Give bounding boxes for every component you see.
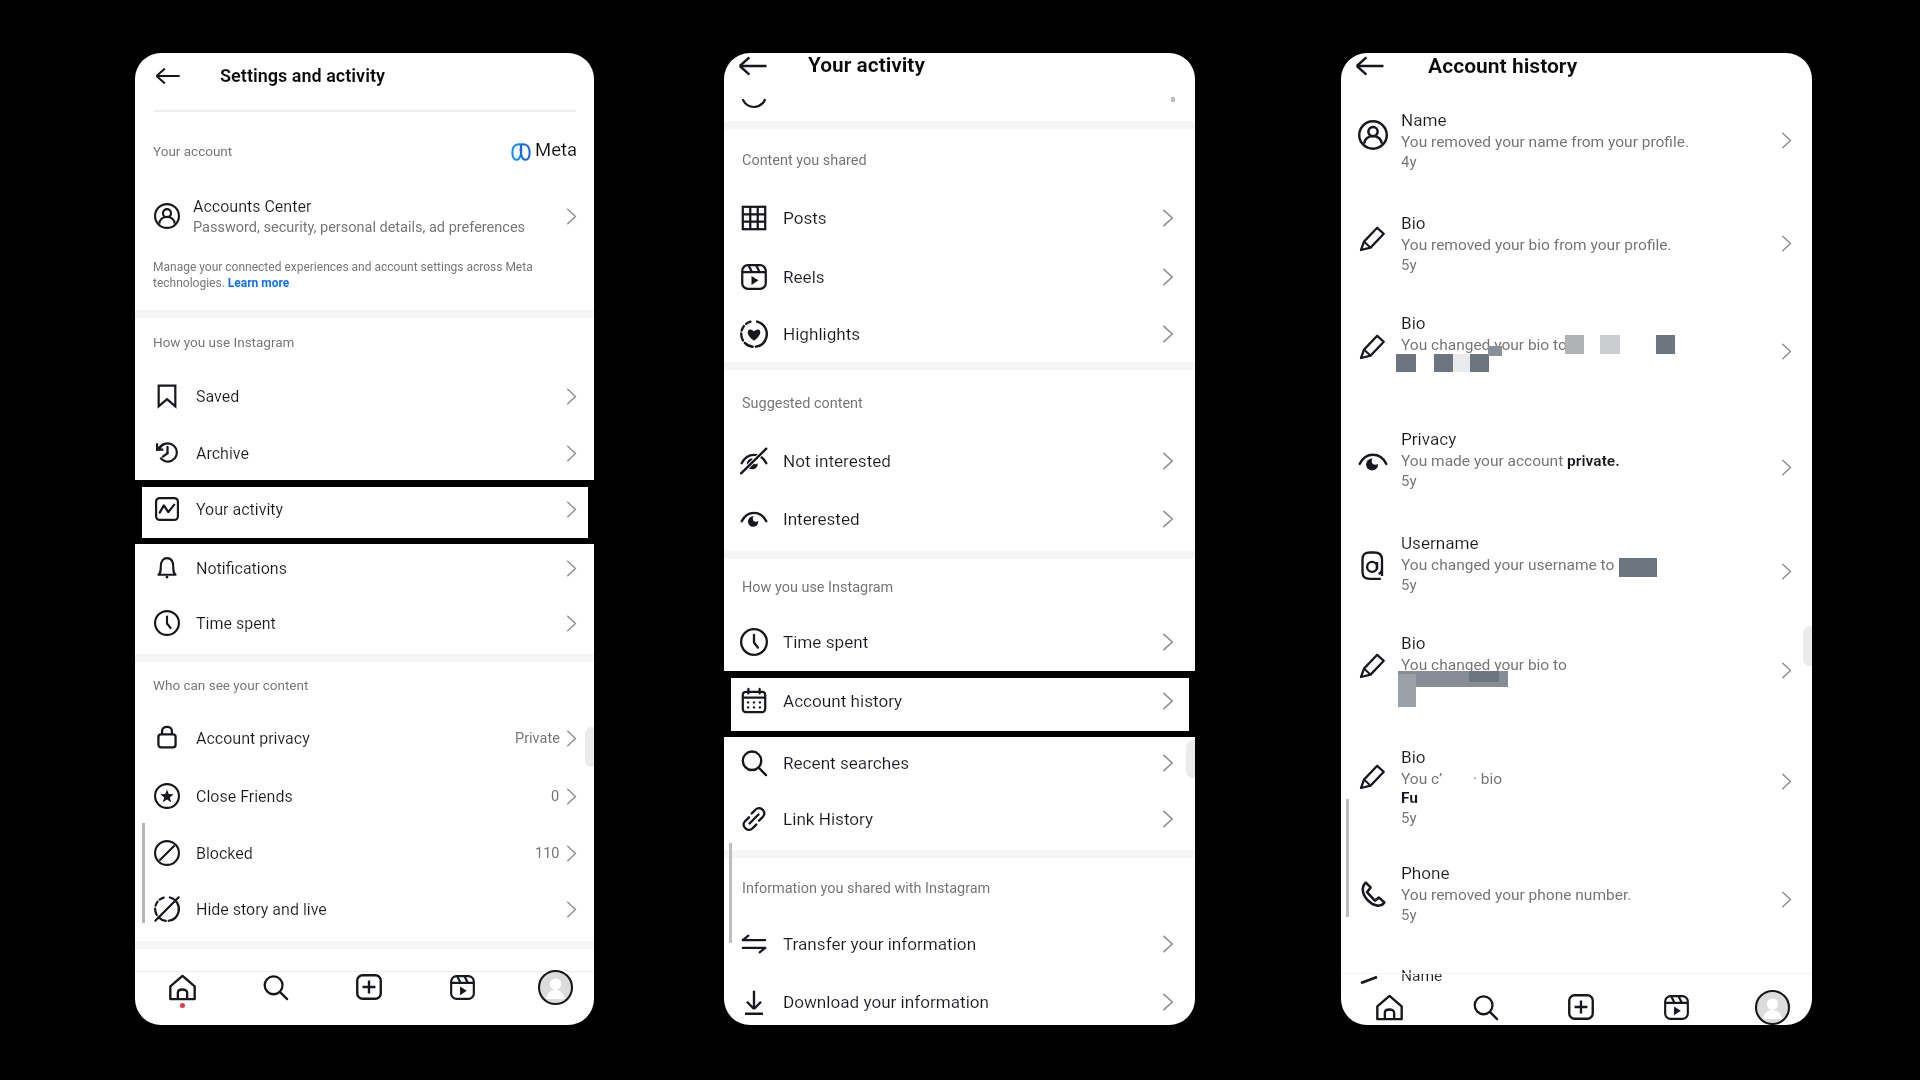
button[interactable]: Posts [724, 190, 1195, 246]
button[interactable]: Name [1341, 110, 1812, 190]
button[interactable]: Blocked [135, 825, 594, 881]
button[interactable]: Time spent [135, 595, 594, 651]
staticText: Suggested content [742, 395, 863, 412]
button[interactable]: Highlights [724, 306, 1195, 362]
button[interactable]: Reels [416, 961, 508, 1013]
button[interactable]: Download your information [724, 974, 1195, 1025]
button[interactable]: Reels [1629, 981, 1723, 1025]
staticText: Bio [1401, 747, 1426, 767]
staticText: Reels [783, 267, 825, 287]
button[interactable]: Time spent [724, 614, 1195, 670]
staticText: 0 [551, 788, 560, 805]
staticText: You removed your phone number. [1401, 886, 1632, 904]
staticText: Private [515, 730, 560, 747]
button[interactable]: Bio [1341, 747, 1812, 827]
staticText: You c’ · bio [1401, 770, 1503, 788]
staticText: 5y [1401, 809, 1417, 827]
staticText: Hide story and live [196, 900, 327, 919]
staticText: Information you shared with Instagram [742, 880, 991, 897]
staticText: Download your information [783, 992, 989, 1012]
staticText: Saved [196, 387, 240, 406]
button[interactable]: Search [229, 961, 321, 1013]
staticText: Archive [196, 444, 249, 463]
button[interactable]: Not interested [724, 433, 1195, 489]
staticText: Not interested [783, 451, 891, 471]
button[interactable]: Interested [724, 491, 1195, 547]
button[interactable]: Bio [1341, 213, 1812, 293]
button[interactable]: Learn more [218, 277, 273, 293]
staticText: Notifications [196, 559, 287, 578]
staticText: 4y [1401, 153, 1417, 171]
staticText: You removed your bio from your profile. [1401, 236, 1672, 254]
staticText: Who can see your content [153, 677, 309, 693]
staticText: Close Friends [196, 787, 293, 806]
button[interactable]: Search [1438, 981, 1532, 1025]
button[interactable]: Reels [724, 249, 1195, 305]
staticText: Recent searches [783, 753, 910, 773]
staticText: Link History [783, 809, 874, 829]
button[interactable]: Recent searches [724, 735, 1195, 791]
button[interactable]: Link History [724, 791, 1195, 847]
button[interactable]: Home [136, 961, 228, 1013]
button[interactable]: Back [155, 64, 181, 88]
staticText: How you use Instagram [153, 334, 295, 350]
staticText: Password, security, personal details, ad… [193, 219, 526, 236]
staticText: Accounts Center [193, 197, 312, 216]
button[interactable]: Privacy [1341, 429, 1812, 509]
button[interactable]: Create [323, 961, 415, 1013]
staticText: Privacy [1401, 429, 1457, 449]
staticText: You removed your name from your profile. [1401, 133, 1690, 151]
button[interactable]: Your activity [135, 481, 594, 537]
staticText: Fu [1401, 789, 1419, 807]
staticText: Your activity [196, 500, 284, 519]
button[interactable]: Account privacy [135, 710, 594, 766]
staticText: Time spent [783, 632, 869, 652]
staticText: Manage your connected experiences and ac… [153, 260, 584, 290]
button[interactable]: Create [1534, 981, 1628, 1025]
staticText: Settings and activity [220, 65, 386, 86]
button[interactable]: Close Friends [135, 768, 594, 824]
staticText: Your account [153, 143, 233, 159]
staticText: Bio [1401, 213, 1426, 233]
staticText: Phone [1401, 863, 1450, 883]
staticText: Username [1401, 533, 1479, 553]
staticText: You made your account private. [1401, 452, 1620, 470]
staticText: 110 [535, 845, 560, 862]
staticText: 5y [1401, 906, 1417, 924]
staticText: You changed your bio to [1401, 336, 1567, 354]
button[interactable]: Bio [1341, 313, 1812, 393]
staticText: Your activity [808, 53, 925, 77]
staticText: Account privacy [196, 729, 310, 748]
button[interactable]: Notifications [135, 540, 594, 596]
button[interactable]: Back [738, 53, 768, 80]
staticText: Content you shared [742, 152, 867, 169]
staticText: Name [1401, 967, 1443, 985]
button[interactable]: Transfer your information [724, 916, 1195, 972]
button[interactable]: Profile [1725, 981, 1812, 1025]
staticText: Time spent [196, 614, 276, 633]
staticText: Transfer your information [783, 934, 977, 954]
staticText: Blocked [196, 844, 253, 863]
staticText: How you use Instagram [742, 579, 894, 596]
staticText: Meta [535, 139, 578, 161]
button[interactable]: Accounts Center [135, 187, 594, 245]
button[interactable]: Home [1342, 981, 1436, 1025]
button[interactable]: Account history [724, 673, 1195, 729]
staticText: Interested [783, 509, 860, 529]
staticText: Name [1401, 110, 1447, 130]
staticText: 5y [1401, 472, 1417, 490]
button[interactable]: Username [1341, 533, 1812, 613]
button[interactable]: Profile [509, 961, 594, 1013]
staticText: Account history [783, 691, 903, 711]
button[interactable]: Back [1355, 53, 1385, 80]
staticText: Bio [1401, 633, 1426, 653]
button[interactable]: Archive [135, 425, 594, 481]
staticText: You changed your username to ‘ [1401, 556, 1622, 574]
button[interactable]: Hide story and live [135, 881, 594, 937]
staticText: Posts [783, 208, 827, 228]
button[interactable]: Phone [1341, 863, 1812, 943]
button[interactable]: Bio [1341, 633, 1812, 713]
staticText: Account history [1428, 53, 1578, 78]
staticText: 5y [1401, 576, 1417, 594]
button[interactable]: Saved [135, 368, 594, 424]
